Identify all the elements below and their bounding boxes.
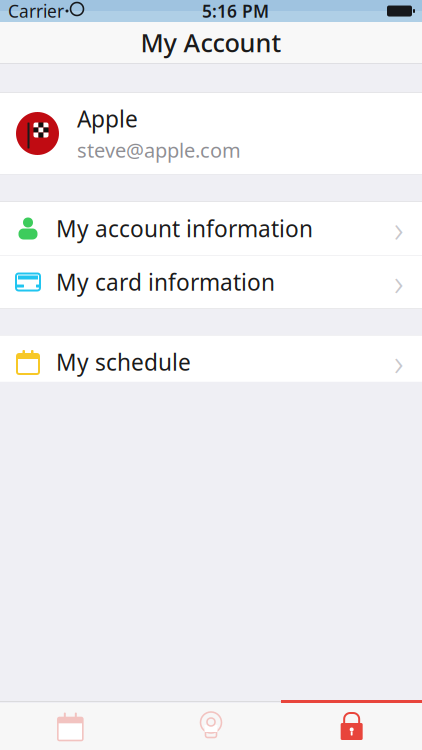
button[interactable]: My card information <box>0 255 422 308</box>
staticText: 5:16 PM <box>202 0 269 22</box>
button[interactable]: My account information <box>0 202 422 255</box>
staticText: My account information <box>56 213 313 243</box>
staticText: › <box>394 205 404 252</box>
staticText: › <box>394 338 404 386</box>
staticText: › <box>394 258 404 306</box>
button[interactable]: Map <box>141 703 281 750</box>
staticText: Apple <box>77 104 138 134</box>
staticText: My card information <box>56 267 275 297</box>
button[interactable]: Schedule <box>0 703 141 750</box>
staticText: Carrier <box>8 0 64 22</box>
button[interactable]: Apple <box>0 93 422 174</box>
button[interactable]: My schedule <box>0 335 422 388</box>
button[interactable]: My Account <box>281 703 422 750</box>
staticText: My schedule <box>56 347 191 377</box>
staticText: steve@apple.com <box>77 137 241 163</box>
staticText: My Account <box>140 26 281 59</box>
